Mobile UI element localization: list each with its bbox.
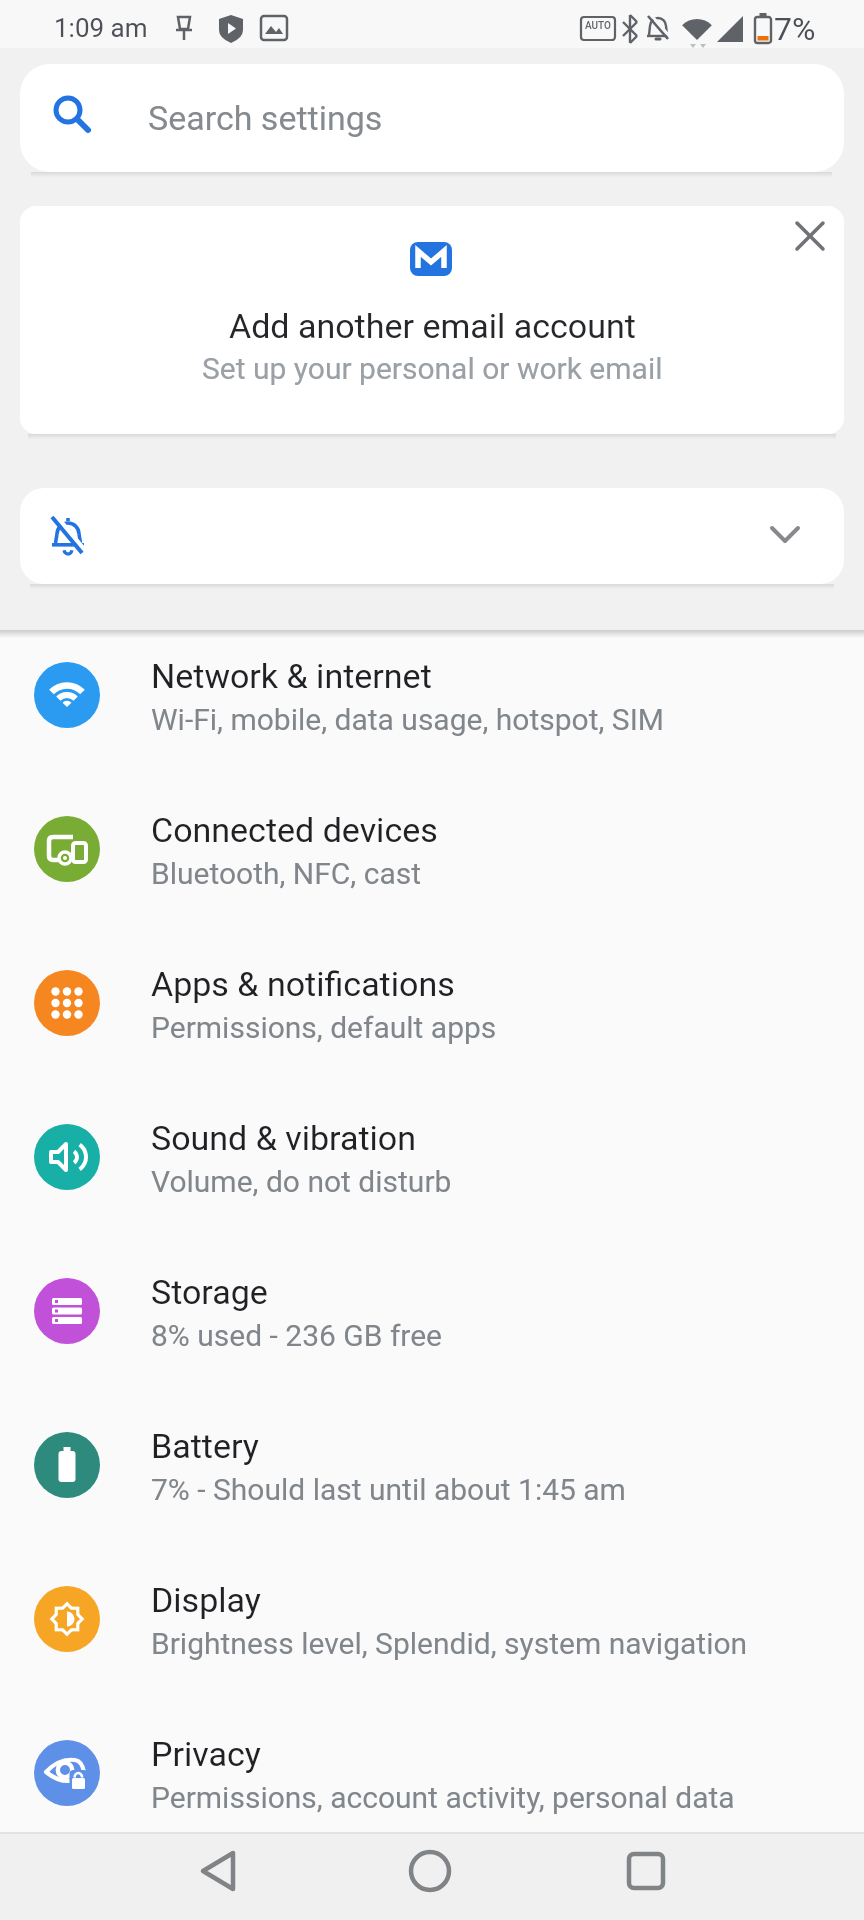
staticText: Battery xyxy=(151,1426,259,1466)
staticText: Set up your personal or work email xyxy=(202,351,663,386)
staticText: Permissions, default apps xyxy=(151,1010,497,1045)
staticText: Apps & notifications xyxy=(151,964,455,1004)
staticText: Network & internet xyxy=(151,656,432,696)
staticText: Volume, do not disturb xyxy=(151,1164,452,1199)
staticText: Search settings xyxy=(148,98,383,138)
staticText: 7% - Should last until about 1:45 am xyxy=(151,1472,626,1507)
staticText: 7% xyxy=(774,10,816,48)
staticText: 1:09 am xyxy=(54,13,148,43)
staticText: Display xyxy=(151,1580,261,1620)
staticText: Sound & vibration xyxy=(151,1118,417,1158)
staticText: Connected devices xyxy=(151,810,438,850)
staticText: Add another email account xyxy=(229,306,636,346)
staticText: AUTO xyxy=(585,20,611,32)
staticText: 8% used - 236 GB free xyxy=(151,1318,443,1353)
staticText: Permissions, account activity, personal … xyxy=(151,1780,735,1815)
staticText: Privacy xyxy=(151,1734,261,1774)
staticText: Wi-Fi, mobile, data usage, hotspot, SIM xyxy=(151,702,664,737)
staticText: Brightness level, Splendid, system navig… xyxy=(151,1626,748,1661)
staticText: Storage xyxy=(151,1272,268,1312)
staticText: Bluetooth, NFC, cast xyxy=(151,856,422,891)
